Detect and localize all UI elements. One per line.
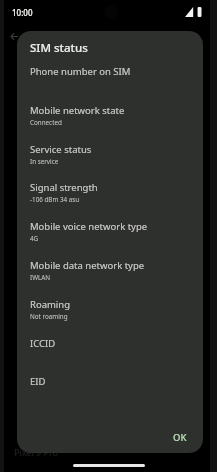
staticText: 10:00 xyxy=(12,7,33,18)
button[interactable]: Service status xyxy=(17,143,203,181)
staticText: OK xyxy=(173,431,187,444)
button[interactable]: OK xyxy=(164,426,196,449)
staticText: Mobile network state xyxy=(30,104,125,117)
staticText: Phone number on SIM xyxy=(30,65,131,78)
staticText: In service xyxy=(30,157,59,166)
button[interactable]: ICCID xyxy=(17,337,203,375)
staticText: IWLAN xyxy=(30,273,51,282)
staticText: -106 dBm 34 asu xyxy=(30,195,80,204)
staticText: ICCID xyxy=(30,337,56,350)
staticText: EID xyxy=(30,375,46,388)
staticText: Pixel 9 Pro xyxy=(14,446,59,458)
button[interactable]: Mobile network state xyxy=(17,104,203,142)
staticText: Mobile data network type xyxy=(30,259,145,272)
staticText: SIM status xyxy=(30,40,88,56)
button[interactable]: Roaming xyxy=(17,298,203,336)
staticText: Roaming xyxy=(30,298,71,311)
button[interactable]: Mobile voice network type xyxy=(17,220,203,258)
staticText: Not roaming xyxy=(30,312,68,321)
button[interactable]: Phone number on SIM xyxy=(17,65,203,103)
staticText: Service status xyxy=(30,143,92,156)
other: Signal and battery status xyxy=(185,7,202,17)
button[interactable]: Mobile data network type xyxy=(17,259,203,297)
button[interactable]: EID xyxy=(17,375,203,413)
staticText: Signal strength xyxy=(30,181,98,194)
staticText: Connected xyxy=(30,118,62,127)
button[interactable]: Signal strength xyxy=(17,181,203,219)
staticText: Mobile voice network type xyxy=(30,220,148,233)
staticText: 4G xyxy=(30,234,39,243)
